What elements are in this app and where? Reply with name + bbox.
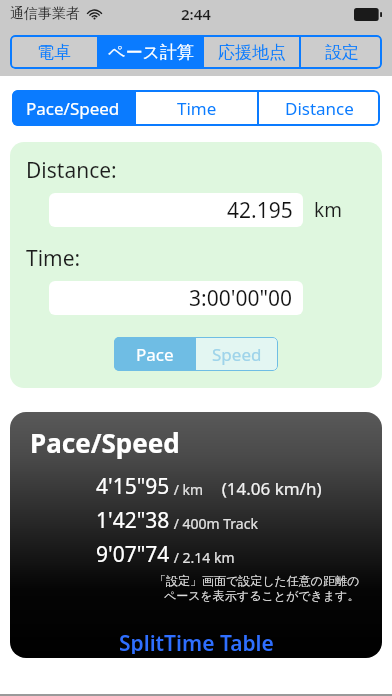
staticText: 応援地点 <box>218 42 286 63</box>
staticText: Speed <box>212 343 262 366</box>
button[interactable]: 3:00'00"00 <box>49 281 303 315</box>
staticText: Pace/Speed <box>26 97 120 120</box>
staticText: SplitTime Table <box>119 629 274 654</box>
button[interactable]: SplitTime Table <box>103 625 290 658</box>
staticText: km <box>314 197 342 223</box>
staticText: 4'15"95 <box>96 472 170 501</box>
button[interactable]: 応援地点 <box>204 35 299 69</box>
staticText: / 400m Track <box>170 514 258 533</box>
staticText: 設定 <box>325 42 359 63</box>
button[interactable]: Pace/Speed <box>12 90 134 126</box>
button[interactable]: 電卓 <box>10 35 97 69</box>
staticText: / 2.14 km <box>170 548 235 567</box>
staticText: 電卓 <box>37 42 71 63</box>
staticText: Distance: <box>26 156 117 185</box>
staticText: 1'42"38 <box>96 506 170 535</box>
staticText: ペース計算 <box>108 42 194 63</box>
staticText: / km <box>170 480 204 499</box>
button[interactable]: ペース計算 <box>99 35 202 69</box>
staticText: Pace/Speed <box>30 425 180 460</box>
staticText: 「設定」画面で設定した任意の距離の <box>154 573 360 588</box>
staticText: (14.06 km/h) <box>204 477 322 500</box>
button[interactable]: Speed <box>196 337 278 371</box>
staticText: ペースを表示することができます。 <box>164 588 360 603</box>
staticText: Time <box>177 97 217 120</box>
button[interactable]: Pace <box>114 337 195 371</box>
button[interactable]: Distance <box>259 90 380 126</box>
button[interactable]: Time <box>136 90 257 126</box>
staticText: 2:44 <box>181 4 211 24</box>
staticText: Pace <box>136 343 174 366</box>
button[interactable]: 42.195 <box>49 193 303 227</box>
staticText: Distance <box>285 97 354 120</box>
staticText: 3:00'00"00 <box>189 284 293 313</box>
staticText: Time: <box>26 244 81 273</box>
staticText: 9'07"74 <box>96 540 170 569</box>
button[interactable]: 設定 <box>301 35 382 69</box>
staticText: 42.195 <box>227 196 293 225</box>
staticText: 通信事業者 <box>10 5 80 23</box>
